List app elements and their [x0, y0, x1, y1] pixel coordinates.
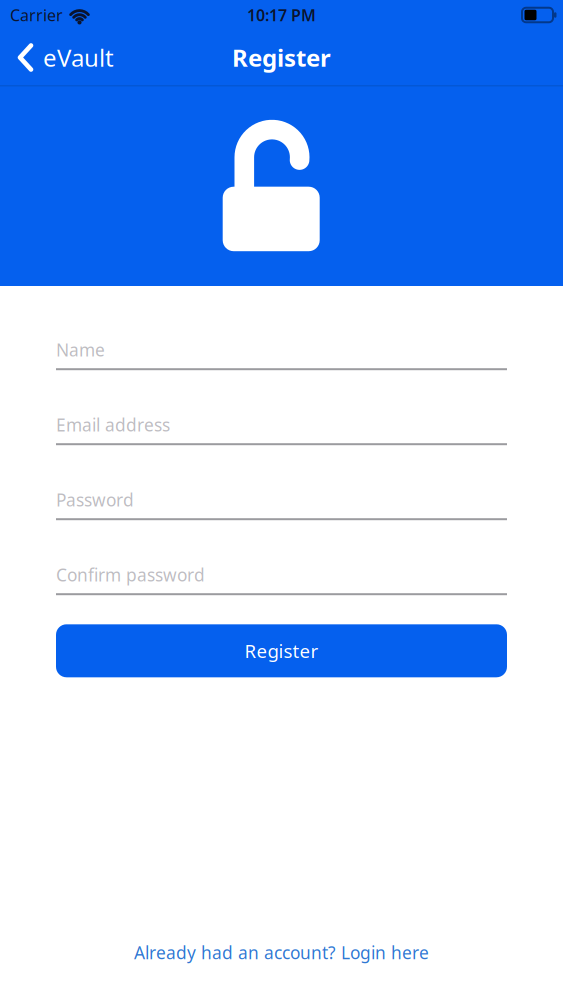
- staticText: Name: [56, 338, 105, 361]
- staticText: Confirm password: [56, 563, 205, 586]
- staticText: Register: [232, 42, 331, 73]
- textField[interactable]: Name: [56, 295, 507, 370]
- button[interactable]: Already had an account? Login here: [134, 941, 429, 964]
- textField[interactable]: Email address: [56, 370, 507, 445]
- staticText: Email address: [56, 413, 170, 436]
- staticText: eVault: [43, 42, 114, 73]
- button[interactable]: Register: [56, 624, 507, 677]
- textField[interactable]: Confirm password: [56, 520, 507, 595]
- button[interactable]: Back: [0, 42, 114, 73]
- staticText: Register: [244, 638, 318, 663]
- staticText: 10:17 PM: [247, 4, 316, 26]
- staticText: Already had an account? Login here: [134, 941, 429, 964]
- staticText: Carrier: [10, 4, 63, 26]
- staticText: Password: [56, 488, 134, 511]
- textField[interactable]: Password: [56, 445, 507, 520]
